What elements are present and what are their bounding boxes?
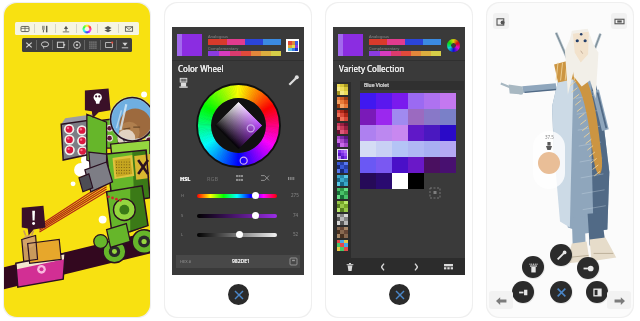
button[interactable]: x	[22, 38, 36, 52]
button[interactable]: target	[69, 38, 84, 52]
button[interactable]: Palette	[337, 162, 348, 173]
button[interactable]: Palette	[337, 188, 348, 199]
button[interactable]: Close	[228, 284, 249, 305]
button[interactable]: Delete	[333, 258, 366, 275]
staticText: 37.5	[545, 134, 554, 140]
button[interactable]: Palette	[337, 201, 348, 212]
staticText: Complementary	[208, 46, 239, 51]
button[interactable]: Add swatch	[430, 188, 440, 198]
button[interactable]: Grid view	[432, 258, 465, 275]
button[interactable]: Palette	[338, 150, 347, 159]
staticText: 982DE1	[232, 258, 250, 265]
button[interactable]: Contrast	[586, 281, 608, 303]
staticText: HEX #	[180, 259, 192, 264]
button[interactable]: down	[117, 38, 132, 52]
button[interactable]: Swatches	[226, 171, 252, 185]
button[interactable]: Redo	[607, 291, 631, 309]
button[interactable]: Gradient	[278, 171, 304, 185]
button[interactable]: Eyedropper	[550, 244, 572, 266]
button[interactable]: RGB	[199, 171, 226, 185]
staticText: Analogous	[208, 34, 228, 39]
button[interactable]: dots	[85, 38, 100, 52]
button[interactable]: Gallery	[493, 13, 509, 29]
button[interactable]: rect	[53, 38, 68, 52]
button[interactable]: Mix	[252, 171, 278, 185]
button[interactable]: Airbrush	[522, 256, 544, 278]
staticText: Color Wheel	[178, 63, 224, 74]
staticText: RGB	[207, 175, 219, 182]
button[interactable]: layers	[98, 22, 118, 35]
button[interactable]: Palette	[337, 240, 348, 251]
staticText: Variety Collection	[339, 63, 405, 74]
button[interactable]: image	[119, 22, 139, 35]
button[interactable]: Next	[399, 258, 432, 275]
button[interactable]: Layers	[611, 13, 627, 29]
staticText: Analogous	[369, 34, 389, 39]
button[interactable]: Brush	[512, 281, 534, 303]
button[interactable]: Palette	[337, 123, 348, 134]
staticText: H	[181, 193, 184, 198]
button[interactable]: Color wheel	[446, 38, 460, 52]
button[interactable]: Close	[389, 284, 410, 305]
button[interactable]: wheel	[77, 22, 97, 35]
staticText: HSL	[180, 175, 191, 182]
button[interactable]: Palette	[337, 227, 348, 238]
button[interactable]: brush	[56, 22, 76, 35]
button[interactable]: Undo	[489, 291, 513, 309]
button[interactable]: Palette	[337, 175, 348, 186]
button[interactable]: Eyedropper	[288, 75, 299, 86]
button[interactable]: Palette	[337, 97, 348, 108]
button[interactable]: Close	[550, 281, 572, 303]
button[interactable]: Palette	[337, 84, 348, 95]
button[interactable]: Copy	[290, 258, 297, 265]
button[interactable]: Palette	[337, 136, 348, 147]
button[interactable]: pen	[35, 22, 55, 35]
button[interactable]: grid	[15, 22, 34, 35]
button[interactable]: lasso	[37, 38, 52, 52]
button[interactable]: Smudge	[577, 257, 599, 279]
button[interactable]: Palette	[337, 214, 348, 225]
button[interactable]: HSL	[172, 171, 199, 185]
button[interactable]: Palette	[337, 110, 348, 121]
button[interactable]: Palettes	[286, 39, 299, 52]
staticText: 275	[291, 192, 299, 198]
button[interactable]: Previous	[366, 258, 399, 275]
staticText: Complementary	[369, 46, 400, 51]
button[interactable]: Stamp	[178, 77, 189, 88]
button[interactable]: crop	[101, 38, 116, 52]
